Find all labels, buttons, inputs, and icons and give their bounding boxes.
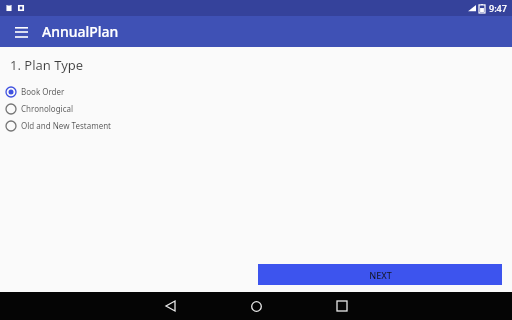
staticText: 9:47 [489,2,507,14]
button[interactable]: Book Order [0,83,512,100]
staticText: Old and New Testament [21,120,111,131]
button[interactable]: Old and New Testament [0,117,512,134]
button[interactable]: NEXT [258,264,502,285]
staticText: Book Order [21,86,65,97]
button[interactable]: Home [232,292,280,320]
staticText: NEXT [369,269,392,281]
button[interactable]: Open navigation menu [8,19,34,45]
staticText: AnnualPlan [42,22,119,41]
staticText: 1. Plan Type [10,56,84,74]
button[interactable]: Recent apps [318,292,366,320]
button[interactable]: Back [146,292,194,320]
staticText: Chronological [21,103,74,114]
button[interactable]: Chronological [0,100,512,117]
